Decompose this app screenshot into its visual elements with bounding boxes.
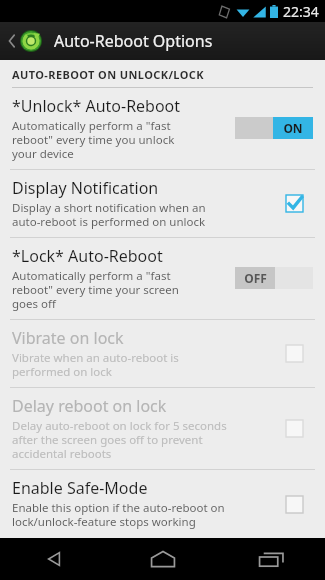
- staticText: Auto-Reboot Options: [54, 30, 213, 52]
- staticText: Vibrate on lock: [12, 327, 124, 349]
- button[interactable]: Back: [0, 538, 109, 580]
- button[interactable]: Delay reboot on lock: [0, 388, 325, 469]
- staticText: Enable Safe-Mode: [12, 477, 148, 499]
- button[interactable]: Enable Safe-Mode: [0, 470, 325, 538]
- button[interactable]: Navigate up: [0, 26, 46, 56]
- button[interactable]: Recent apps: [217, 538, 325, 580]
- staticText: Enable this option if the auto-reboot on…: [12, 500, 225, 530]
- button[interactable]: *Lock* Auto-Reboot: [0, 238, 325, 319]
- button[interactable]: Switch off: [235, 267, 313, 289]
- staticText: *Unlock* Auto-Reboot: [12, 95, 181, 117]
- button[interactable]: Unchecked: [279, 489, 309, 519]
- button[interactable]: Vibrate on lock: [0, 320, 325, 387]
- button[interactable]: *Unlock* Auto-Reboot: [0, 88, 325, 169]
- staticText: Delay auto-reboot on lock for 5 seconds …: [12, 418, 227, 461]
- staticText: OFF: [244, 270, 267, 286]
- button[interactable]: Unchecked: [279, 338, 309, 368]
- staticText: Delay reboot on lock: [12, 395, 167, 417]
- button[interactable]: Display Notification: [0, 170, 325, 237]
- button[interactable]: Unchecked: [279, 413, 309, 443]
- staticText: Vibrate when an auto-reboot is performed…: [12, 350, 179, 379]
- staticText: Display a short notification when an aut…: [12, 200, 206, 229]
- button[interactable]: Switch on: [235, 117, 313, 139]
- staticText: AUTO-REBOOT ON UNLOCK/LOCK: [12, 67, 204, 82]
- staticText: Display Notification: [12, 177, 159, 199]
- staticText: Automatically perform a "fast reboot" ev…: [12, 118, 175, 161]
- staticText: 22:34: [283, 2, 319, 21]
- button[interactable]: Home: [109, 538, 217, 580]
- staticText: Automatically perform a "fast reboot" ev…: [12, 268, 179, 311]
- button[interactable]: Checked: [279, 188, 309, 218]
- staticText: *Lock* Auto-Reboot: [12, 245, 163, 267]
- staticText: ON: [283, 120, 303, 136]
